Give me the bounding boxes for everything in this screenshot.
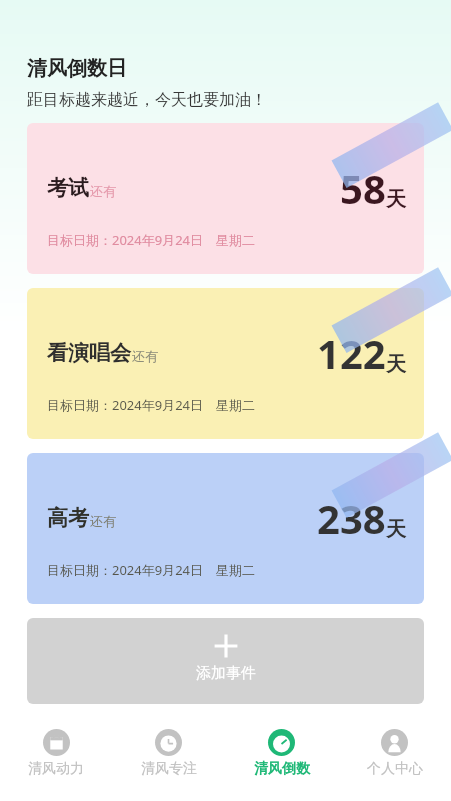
staticText: 目标日期：2024年9月24日 星期二 bbox=[47, 231, 256, 249]
staticText: 目标日期：2024年9月24日 星期二 bbox=[47, 396, 256, 414]
button[interactable]: 清风专注 bbox=[112, 715, 225, 801]
staticText: 还有 bbox=[90, 513, 116, 529]
staticText: 看演唱会 bbox=[47, 340, 131, 366]
staticText: 清风动力 bbox=[28, 760, 84, 778]
staticText: 天 bbox=[386, 352, 406, 377]
staticText: 清风倒数 bbox=[254, 760, 310, 778]
staticText: 清风专注 bbox=[141, 760, 197, 778]
staticText: 还有 bbox=[90, 183, 116, 199]
staticText: 58 bbox=[340, 161, 386, 215]
staticText: 天 bbox=[386, 517, 406, 542]
button[interactable]: 添加事件 bbox=[27, 618, 424, 704]
button[interactable]: 个人中心 bbox=[338, 715, 451, 801]
staticText: 122 bbox=[317, 326, 386, 380]
button[interactable]: 高考 bbox=[27, 453, 424, 604]
button[interactable]: 考试 bbox=[27, 123, 424, 274]
staticText: 238 bbox=[317, 491, 386, 545]
button[interactable]: 清风动力 bbox=[0, 715, 112, 801]
staticText: 目标日期：2024年9月24日 星期二 bbox=[47, 561, 256, 579]
staticText: 清风倒数日 bbox=[27, 56, 127, 81]
button[interactable]: 看演唱会 bbox=[27, 288, 424, 439]
staticText: 天 bbox=[386, 187, 406, 212]
button[interactable]: 清风倒数 bbox=[225, 715, 338, 801]
staticText: 还有 bbox=[132, 348, 158, 364]
staticText: 个人中心 bbox=[367, 760, 423, 778]
staticText: 距目标越来越近，今天也要加油！ bbox=[27, 90, 267, 110]
staticText: 考试 bbox=[47, 175, 89, 201]
staticText: 添加事件 bbox=[196, 664, 256, 683]
staticText: 高考 bbox=[47, 505, 89, 531]
